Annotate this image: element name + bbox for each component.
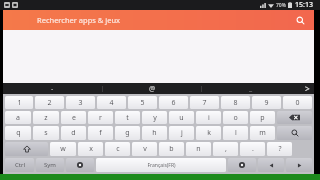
staticText: s (44, 128, 48, 138)
staticText: h (152, 128, 157, 138)
button[interactable]: i (196, 111, 221, 124)
button[interactable]: a (5, 111, 31, 124)
staticText: o (233, 113, 238, 123)
staticText: @ (149, 84, 156, 94)
button[interactable] (277, 111, 312, 124)
staticText: m (259, 128, 266, 138)
staticText: 1 (17, 98, 22, 108)
button[interactable]: c (105, 142, 130, 156)
button[interactable]: x (78, 142, 103, 156)
button[interactable]: Rechercher (294, 14, 306, 26)
button[interactable]: 6 (159, 96, 188, 109)
staticText: 8 (233, 98, 238, 108)
staticText: 3 (78, 98, 83, 108)
button[interactable]: y (142, 111, 167, 124)
button[interactable]: j (169, 126, 194, 140)
staticText: b (169, 144, 174, 154)
staticText: ? (278, 144, 282, 154)
button[interactable]: v (132, 142, 157, 156)
staticText: > (305, 83, 310, 94)
button[interactable] (258, 158, 284, 172)
button[interactable]: 7 (190, 96, 219, 109)
button[interactable]: 1 (5, 96, 33, 109)
staticText: 5 (140, 98, 145, 108)
staticText: n (196, 144, 201, 154)
button[interactable] (228, 158, 256, 172)
button[interactable]: 5 (128, 96, 157, 109)
staticText: 70% (276, 2, 286, 9)
staticText: c (116, 144, 120, 154)
button[interactable]: @ (103, 83, 201, 94)
button[interactable]: , (213, 142, 238, 156)
button[interactable]: 4 (97, 96, 126, 109)
button[interactable]: o (223, 111, 248, 124)
button[interactable]: 0 (283, 96, 312, 109)
staticText: 15:13 (295, 0, 313, 10)
button[interactable] (277, 126, 312, 140)
staticText: Sym (44, 161, 56, 169)
button[interactable]: Ctrl (5, 158, 34, 172)
staticText: 0 (295, 98, 300, 108)
button[interactable]: q (5, 126, 31, 140)
button[interactable]: Sym (36, 158, 64, 172)
staticText: Français(FR) (147, 162, 176, 169)
staticText: _ (249, 84, 253, 94)
button[interactable]: 9 (252, 96, 281, 109)
staticText: 9 (264, 98, 269, 108)
staticText: i (208, 113, 210, 123)
staticText: t (126, 113, 129, 123)
button[interactable]: t (115, 111, 140, 124)
button[interactable] (286, 158, 312, 172)
staticText: , (225, 144, 227, 154)
staticText: y (153, 113, 157, 123)
button[interactable]: Rechercher apps & jeux (3, 10, 314, 30)
button[interactable]: g (115, 126, 140, 140)
button[interactable]: h (142, 126, 167, 140)
button[interactable]: 2 (35, 96, 64, 109)
button[interactable]: 8 (221, 96, 250, 109)
button[interactable]: f (88, 126, 113, 140)
staticText: p (260, 113, 265, 123)
staticText: j (181, 128, 183, 138)
staticText: k (207, 128, 211, 138)
button[interactable]: Plus de suggestions (300, 83, 314, 94)
staticText: q (16, 128, 21, 138)
button[interactable]: k (196, 126, 221, 140)
button[interactable]: s (33, 126, 59, 140)
staticText: l (235, 128, 237, 138)
staticText: 2 (47, 98, 52, 108)
staticText: w (60, 144, 66, 154)
button[interactable]: b (159, 142, 184, 156)
button[interactable]: ? (267, 142, 292, 156)
button[interactable]: d (61, 126, 86, 140)
staticText: f (99, 128, 102, 138)
button[interactable]: e (61, 111, 86, 124)
button[interactable]: r (88, 111, 113, 124)
button[interactable]: n (186, 142, 211, 156)
button[interactable]: z (33, 111, 59, 124)
staticText: r (99, 113, 102, 123)
button[interactable]: m (250, 126, 275, 140)
staticText: Ctrl (15, 161, 25, 169)
staticText: e (72, 113, 76, 123)
staticText: x (89, 144, 93, 154)
staticText: 4 (109, 98, 114, 108)
button[interactable]: 3 (66, 96, 95, 109)
staticText: z (44, 113, 48, 123)
button[interactable]: p (250, 111, 275, 124)
button[interactable]: - (3, 83, 102, 94)
button[interactable]: l (223, 126, 248, 140)
staticText: - (51, 84, 54, 94)
button[interactable] (66, 158, 94, 172)
button[interactable]: w (50, 142, 76, 156)
button[interactable] (5, 142, 48, 156)
staticText: . (252, 144, 254, 154)
button[interactable]: u (169, 111, 194, 124)
staticText: 6 (171, 98, 176, 108)
staticText: Rechercher apps & jeux (37, 15, 121, 25)
button[interactable]: . (240, 142, 265, 156)
staticText: d (71, 128, 76, 138)
button[interactable]: Français(FR) (96, 158, 226, 172)
staticText: a (16, 113, 20, 123)
